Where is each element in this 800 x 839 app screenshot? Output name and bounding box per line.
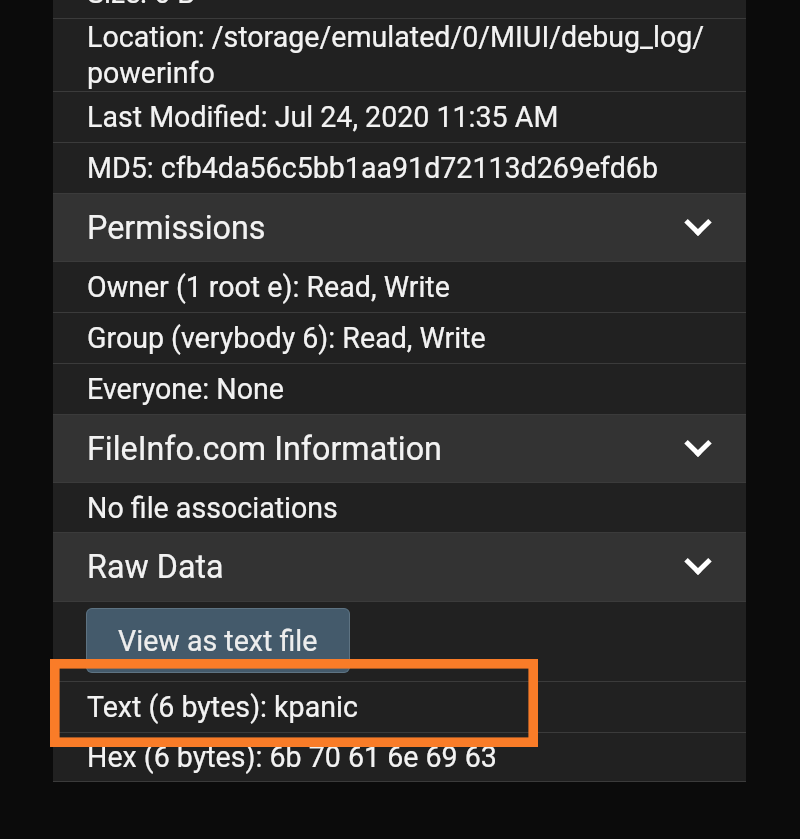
button[interactable]: Hex (6 bytes): 6b 70 61 6e 69 63 (53, 732, 746, 781)
staticText: No file associations (87, 491, 338, 525)
button[interactable]: Group (verybody 6): Read, Write (53, 312, 746, 363)
button[interactable]: Permissions (53, 193, 746, 261)
staticText: Hex (6 bytes): 6b 70 61 6e 69 63 (87, 740, 497, 774)
button[interactable]: Raw Data (53, 532, 746, 601)
staticText: Group (verybody 6): Read, Write (87, 321, 486, 355)
staticText: Location: /storage/emulated/0/MIUI/debug… (87, 20, 738, 90)
other: Collapse Raw Data (674, 543, 722, 591)
button[interactable]: Text (6 bytes): kpanic (53, 681, 746, 732)
staticText: Raw Data (87, 548, 674, 586)
button[interactable]: MD5: cfb4da56c5bb1aa91d72113d269efd6b (53, 142, 746, 193)
other: Collapse FileInfo.com Information (674, 425, 722, 473)
staticText: View as text file (118, 624, 318, 658)
staticText: Text (6 bytes): kpanic (87, 690, 358, 724)
staticText: Owner (1 root e): Read, Write (87, 270, 450, 304)
other: Collapse Permissions (674, 204, 722, 252)
button[interactable]: Last Modified: Jul 24, 2020 11:35 AM (53, 91, 746, 142)
button[interactable]: No file associations (53, 482, 746, 532)
staticText: MD5: cfb4da56c5bb1aa91d72113d269efd6b (87, 151, 658, 185)
staticText: Last Modified: Jul 24, 2020 11:35 AM (87, 100, 559, 134)
staticText: Permissions (87, 209, 674, 247)
button[interactable]: Owner (1 root e): Read, Write (53, 261, 746, 312)
staticText: Everyone: None (87, 372, 284, 406)
button[interactable]: Everyone: None (53, 363, 746, 414)
button[interactable]: Size: 6 B (53, 0, 746, 18)
staticText: FileInfo.com Information (87, 430, 674, 468)
button[interactable]: Location: /storage/emulated/0/MIUI/debug… (53, 18, 746, 91)
button[interactable]: FileInfo.com Information (53, 414, 746, 482)
button[interactable]: View as text file (86, 608, 350, 673)
staticText: Size: 6 B (87, 0, 196, 10)
